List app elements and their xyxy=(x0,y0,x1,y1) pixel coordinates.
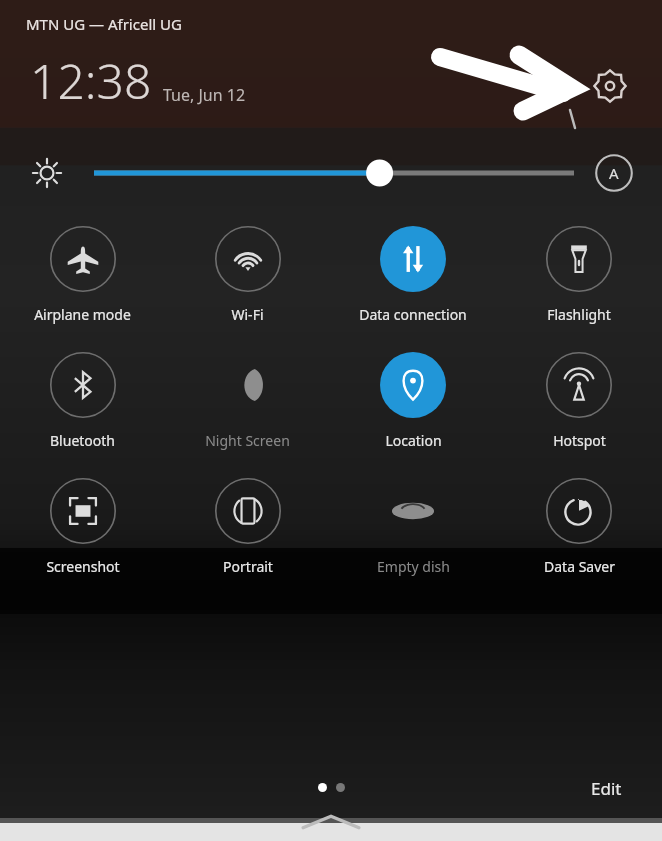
button[interactable]: Auto brightness xyxy=(588,147,640,199)
staticText: Night Screen xyxy=(205,431,290,450)
staticText: Empty dish xyxy=(377,557,450,576)
button[interactable]: Brightness slider xyxy=(94,145,574,201)
button[interactable]: Portrait xyxy=(165,478,330,576)
button[interactable]: Airplane mode xyxy=(0,226,165,324)
staticText: Wi-Fi xyxy=(231,305,264,324)
button[interactable]: Edit xyxy=(591,777,622,800)
staticText: Tue, Jun 12 xyxy=(163,84,246,106)
button[interactable]: Screenshot xyxy=(0,478,165,576)
button[interactable]: Collapse xyxy=(288,807,374,837)
button[interactable]: Flashlight xyxy=(496,226,662,324)
staticText: Flashlight xyxy=(547,305,611,324)
button[interactable]: Settings xyxy=(586,62,634,110)
staticText: Bluetooth xyxy=(50,431,115,450)
staticText: Edit xyxy=(591,777,622,800)
button[interactable]: Data connection xyxy=(330,226,496,324)
button[interactable]: Bluetooth xyxy=(0,352,165,450)
staticText: MTN UG — Africell UG xyxy=(26,14,182,34)
staticText: Data Saver xyxy=(544,557,615,576)
button[interactable]: Data Saver xyxy=(496,478,662,576)
staticText: A xyxy=(609,163,619,183)
staticText: Airplane mode xyxy=(34,305,131,324)
button[interactable]: Hotspot xyxy=(496,352,662,450)
staticText: 12:38 xyxy=(30,48,152,113)
button[interactable]: Empty dish xyxy=(330,478,496,576)
staticText: Screenshot xyxy=(46,557,120,576)
staticText: Portrait xyxy=(223,557,273,576)
button[interactable]: Wi-Fi xyxy=(165,226,330,324)
button[interactable]: Brightness xyxy=(18,144,76,202)
button[interactable]: Night Screen xyxy=(165,352,330,450)
button[interactable]: Location xyxy=(330,352,496,450)
staticText: Hotspot xyxy=(553,431,606,450)
staticText: Data connection xyxy=(359,305,467,324)
staticText: Location xyxy=(385,431,442,450)
